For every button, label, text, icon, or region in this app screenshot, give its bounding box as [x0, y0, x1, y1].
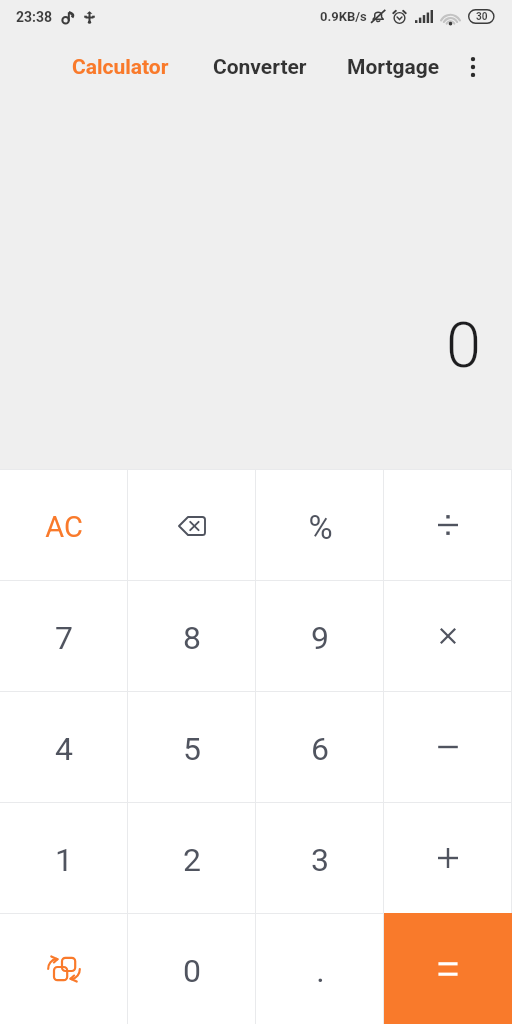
staticText: 0: [183, 952, 201, 990]
staticText: 5: [183, 730, 201, 768]
button[interactable]: AC: [0, 470, 128, 580]
button[interactable]: Unit converter: [0, 914, 128, 1024]
button[interactable]: More options: [450, 44, 496, 90]
button[interactable]: Calculator: [58, 43, 183, 92]
button[interactable]: 9: [256, 581, 384, 691]
button[interactable]: 0: [128, 914, 256, 1024]
button[interactable]: Backspace: [128, 470, 256, 580]
staticText: 3: [311, 841, 329, 879]
button[interactable]: 4: [0, 692, 128, 802]
staticText: 7: [55, 619, 73, 657]
staticText: 0.9KB/s: [320, 9, 367, 24]
staticText: %: [308, 508, 333, 547]
button[interactable]: 3: [256, 803, 384, 913]
button[interactable]: 7: [0, 581, 128, 691]
button[interactable]: Minus: [384, 692, 512, 802]
staticText: 2: [183, 841, 201, 879]
staticText: AC: [45, 510, 83, 544]
button[interactable]: Converter: [199, 43, 321, 92]
button[interactable]: 8: [128, 581, 256, 691]
button[interactable]: 2: [128, 803, 256, 913]
staticText: 8: [183, 619, 201, 657]
staticText: Converter: [213, 55, 307, 80]
staticText: 30: [476, 11, 488, 23]
button[interactable]: .: [256, 914, 384, 1024]
staticText: 9: [311, 619, 329, 657]
button[interactable]: Equals: [384, 913, 512, 1024]
button[interactable]: Multiply: [384, 581, 512, 691]
button[interactable]: Divide: [384, 470, 512, 580]
staticText: 0: [446, 309, 481, 383]
button[interactable]: %: [256, 470, 384, 580]
button[interactable]: Mortgage: [333, 43, 454, 92]
staticText: Mortgage: [347, 55, 440, 80]
button[interactable]: 5: [128, 692, 256, 802]
staticText: 6: [311, 730, 329, 768]
staticText: 23:38: [16, 9, 53, 25]
staticText: 1: [55, 841, 73, 879]
staticText: .: [316, 952, 325, 990]
button[interactable]: Plus: [384, 803, 512, 913]
staticText: Calculator: [72, 55, 169, 80]
button[interactable]: 6: [256, 692, 384, 802]
staticText: 4: [55, 730, 73, 768]
button[interactable]: 1: [0, 803, 128, 913]
